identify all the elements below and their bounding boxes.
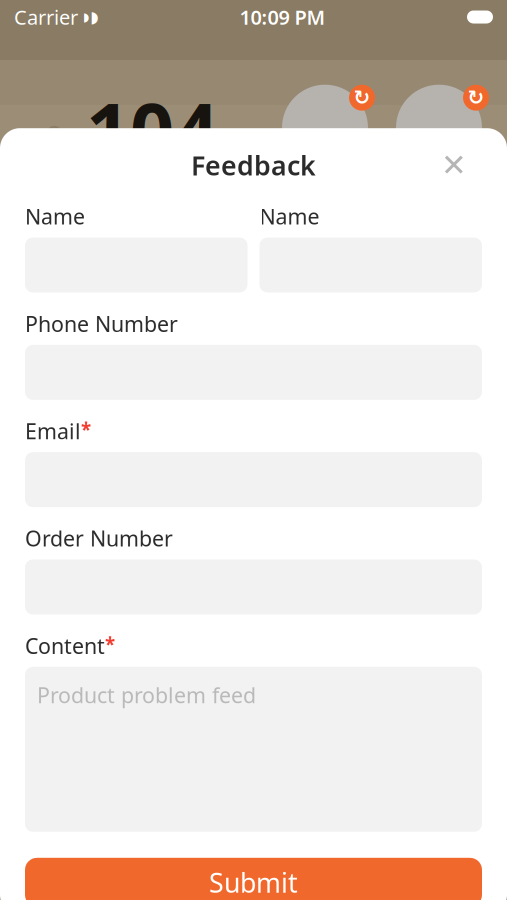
staticText: ⊓: [425, 131, 452, 170]
staticText: ✕: [441, 148, 467, 183]
staticText: 10:09 PM: [239, 4, 325, 30]
staticText: ◗: [90, 8, 98, 26]
staticText: 🌡: [22, 123, 86, 181]
staticText: ◗: [83, 10, 89, 24]
staticText: ↻: [467, 86, 484, 109]
staticText: Order Number: [25, 524, 173, 552]
staticText: Name: [259, 202, 319, 230]
staticText: Submit: [209, 865, 298, 900]
staticText: *: [81, 417, 91, 442]
button[interactable]: Close: [432, 143, 476, 187]
staticText: ⊓: [311, 131, 338, 170]
staticText: Email: [25, 417, 81, 445]
staticText: Product problem feed: [37, 681, 256, 709]
staticText: 104: [86, 78, 218, 181]
staticText: Carrier: [14, 4, 78, 30]
staticText: ↻: [353, 86, 370, 109]
staticText: *: [105, 631, 115, 656]
button[interactable]: Submit: [25, 858, 482, 900]
staticText: Feedback: [191, 147, 316, 183]
staticText: °F: [218, 124, 246, 163]
staticText: Name: [25, 202, 85, 230]
staticText: Phone Number: [25, 309, 178, 338]
button[interactable]: Product problem feed: [25, 667, 482, 832]
staticText: Content: [25, 631, 105, 660]
